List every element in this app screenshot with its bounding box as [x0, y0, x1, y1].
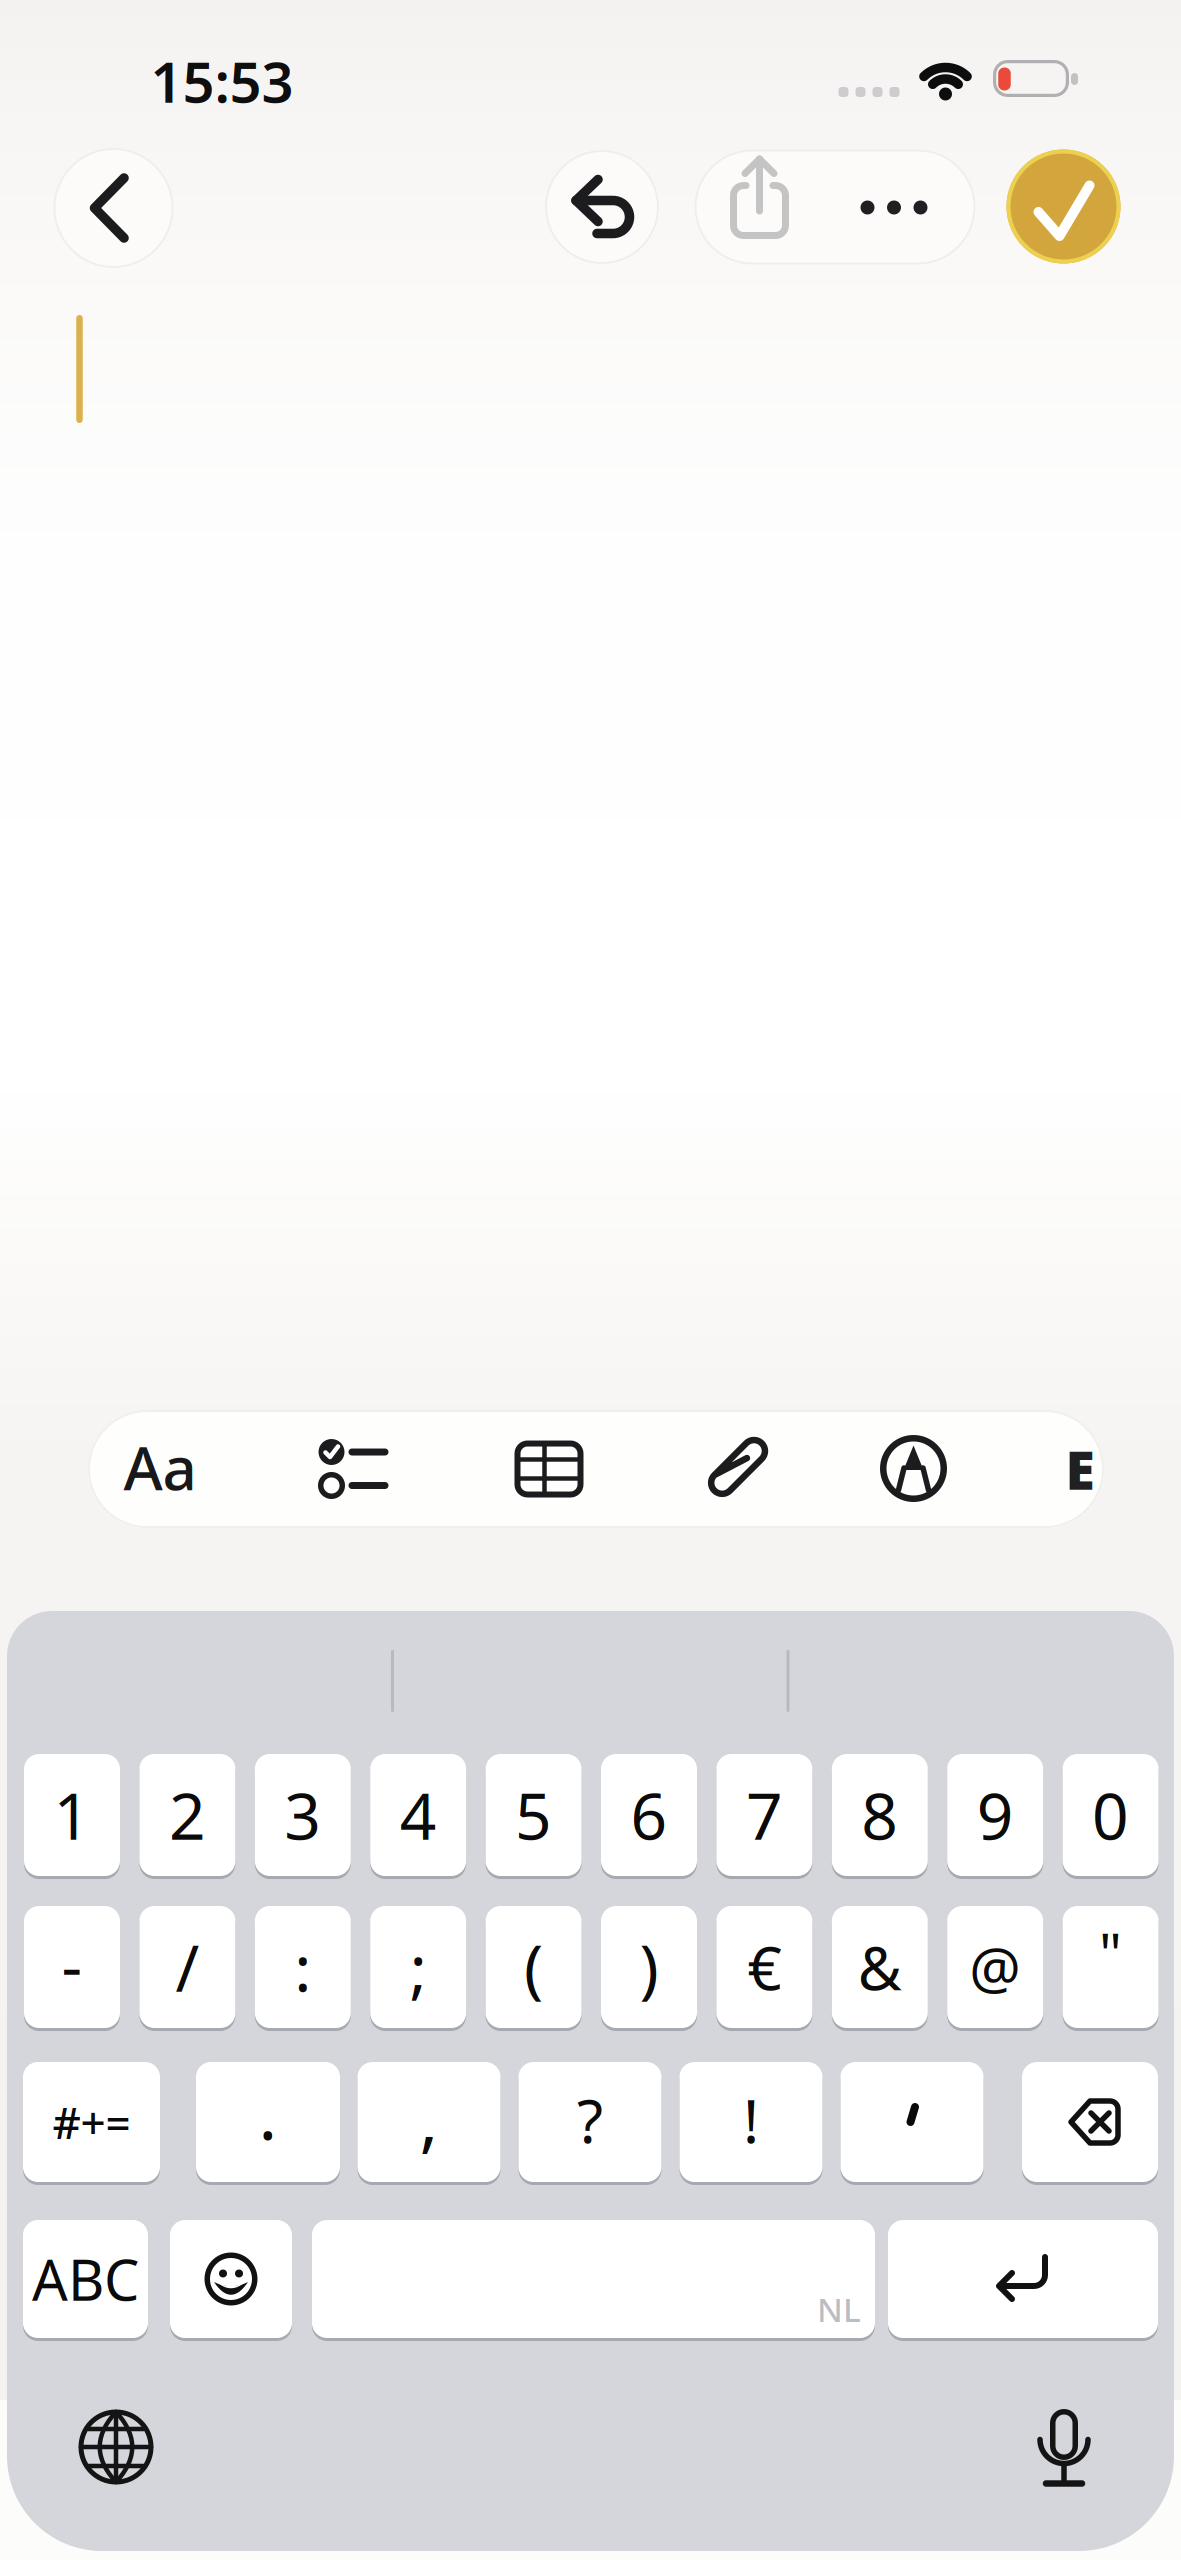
button[interactable]: ( [486, 1904, 582, 2029]
staticText: ? [577, 2080, 603, 2160]
button[interactable]: 0 [1063, 1752, 1159, 1877]
button[interactable] [880, 1435, 947, 1502]
staticText: Aa [123, 1427, 196, 1507]
button[interactable] [53, 148, 173, 268]
staticText: #+= [52, 2093, 130, 2151]
button[interactable]: 2 [139, 1752, 235, 1877]
staticText: 6 [630, 1772, 667, 1857]
button[interactable]: NL [312, 2218, 875, 2339]
button[interactable] [1024, 2402, 1104, 2492]
button[interactable]: . [196, 2060, 340, 2183]
staticText: € [747, 1927, 781, 2007]
button[interactable] [514, 1440, 583, 1497]
button[interactable]: 9 [947, 1752, 1043, 1877]
staticText: 4 [400, 1772, 437, 1857]
button[interactable]: ABC [23, 2218, 148, 2339]
button[interactable]: & [832, 1904, 928, 2029]
button[interactable] [888, 2218, 1158, 2339]
button[interactable]: 1 [24, 1752, 120, 1877]
staticText: @ [969, 1929, 1021, 2005]
button[interactable] [1022, 2060, 1158, 2183]
button[interactable] [853, 177, 963, 237]
staticText: 7 [746, 1772, 783, 1857]
staticText: 1 [53, 1772, 90, 1857]
button[interactable]: 5 [486, 1752, 582, 1877]
button[interactable] [76, 2407, 156, 2487]
button[interactable]: € [716, 1904, 812, 2029]
staticText: NL [817, 2287, 861, 2331]
staticText: ! [743, 2080, 759, 2160]
button[interactable]: ) [601, 1904, 697, 2029]
button[interactable]: : [255, 1904, 351, 2029]
button[interactable] [1006, 149, 1120, 263]
button[interactable]: " [1063, 1904, 1159, 2029]
button[interactable]: 7 [716, 1752, 812, 1877]
staticText: 0 [1092, 1772, 1129, 1857]
button[interactable]: E [1055, 1429, 1105, 1509]
button[interactable]: 3 [255, 1752, 351, 1877]
button[interactable]: ? [518, 2060, 661, 2183]
staticText: / [175, 1924, 199, 2009]
button[interactable]: ; [370, 1904, 466, 2029]
staticText: 8 [861, 1772, 898, 1857]
button[interactable]: #+= [23, 2060, 160, 2183]
staticText: : [294, 1924, 311, 2009]
staticText: ) [639, 1924, 658, 2009]
button[interactable] [170, 2218, 292, 2339]
staticText: & [858, 1927, 902, 2007]
button[interactable]: ! [679, 2060, 822, 2183]
button[interactable]: 8 [832, 1752, 928, 1877]
staticText: 3 [284, 1772, 321, 1857]
button[interactable]: Aa [90, 1412, 230, 1522]
staticText: 9 [977, 1772, 1014, 1857]
staticText: 15:53 [150, 44, 293, 118]
button[interactable]: / [139, 1904, 235, 2029]
button[interactable]: 6 [601, 1752, 697, 1877]
staticText: ABC [32, 2242, 139, 2316]
button[interactable]: , [357, 2060, 500, 2183]
button[interactable]: @ [947, 1904, 1043, 2029]
staticText: 5 [515, 1772, 552, 1857]
button[interactable] [318, 1438, 386, 1499]
button[interactable]: - [24, 1904, 120, 2029]
staticText: E [1065, 1434, 1094, 1504]
staticText: ; [410, 1924, 427, 2009]
button[interactable] [697, 1428, 777, 1508]
staticText: 2 [169, 1772, 206, 1857]
staticText: . [258, 2067, 277, 2159]
staticText: ( [524, 1924, 543, 2009]
button[interactable] [733, 155, 785, 239]
button[interactable] [545, 150, 659, 264]
staticText: - [61, 1922, 82, 2007]
staticText: , [419, 2072, 438, 2164]
button[interactable]: 4 [370, 1752, 466, 1877]
button[interactable] [840, 2060, 983, 2183]
staticText: " [1099, 1916, 1122, 1990]
